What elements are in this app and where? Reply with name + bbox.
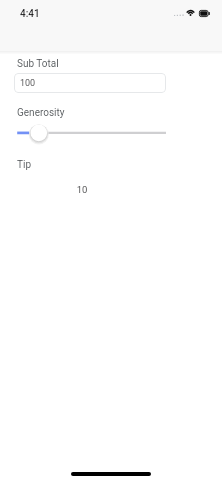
button[interactable]: Sub Total amount input <box>14 73 166 93</box>
staticText: 4:41 <box>20 8 40 20</box>
staticText: Sub Total <box>17 58 59 70</box>
button[interactable]: Generosity slider <box>14 121 166 146</box>
staticText: 10 <box>14 184 150 195</box>
staticText: Generosity <box>17 107 65 119</box>
staticText: Tip <box>17 159 32 171</box>
staticText: 100 <box>20 78 36 89</box>
